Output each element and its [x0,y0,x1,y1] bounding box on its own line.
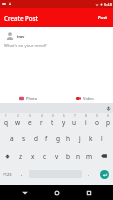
button[interactable]: Voice input [103,103,113,113]
button[interactable]: Post [93,8,113,27]
button[interactable]: Shift [0,147,15,165]
button[interactable]: Backspace [95,147,113,165]
staticText: c [43,152,47,161]
button[interactable]: v [51,147,62,165]
button[interactable]: h [63,130,74,147]
staticText: 8 [85,114,87,118]
button[interactable]: 1 [0,113,12,130]
staticText: x [31,152,35,161]
staticText: l [101,134,103,143]
staticText: What's on your mind? [4,43,47,49]
staticText: d [34,134,38,143]
staticText: p [106,118,110,127]
staticText: Photo [26,96,38,101]
button[interactable]: , [15,165,29,183]
staticText: j [79,134,81,143]
button[interactable]: b [62,147,73,165]
staticText: z [19,152,23,161]
staticText: v [55,152,59,161]
staticText: 3 [29,114,31,118]
staticText: m [86,152,93,161]
staticText: 7 [74,114,76,118]
button[interactable]: a [6,130,18,147]
staticText: i [85,118,87,127]
button[interactable]: x [27,147,39,165]
button[interactable]: l [96,130,107,147]
staticText: a [10,134,14,143]
staticText: 2 [17,114,19,118]
staticText: 9 [96,114,98,118]
staticText: 1 [5,114,7,118]
staticText: w [15,118,21,127]
staticText: , [21,171,23,178]
staticText: Post [98,15,108,21]
staticText: g [56,134,60,143]
button[interactable]: ?123 [0,165,15,183]
button[interactable]: Video [74,94,96,103]
staticText: . [88,171,90,178]
staticText: f [45,134,48,143]
button[interactable]: f [41,130,52,147]
staticText: 6 [63,114,65,118]
button[interactable]: 7 [69,113,80,130]
button[interactable]: 2 [12,113,24,130]
staticText: b [66,152,70,161]
button[interactable]: j [74,130,85,147]
button[interactable]: 9 [91,113,102,130]
staticText: e [28,118,32,127]
button[interactable]: 8 [80,113,91,130]
button[interactable]: 3 [24,113,36,130]
staticText: s [22,134,26,143]
button[interactable]: 0 [102,113,113,130]
staticText: 4 [41,114,43,118]
button[interactable]: c [39,147,51,165]
staticText: trav [17,34,25,39]
button[interactable]: Home [49,185,64,200]
button[interactable]: 4 [36,113,47,130]
button[interactable]: trav [6,32,25,40]
staticText: k [89,134,93,143]
button[interactable]: Photo [17,94,40,103]
staticText: n [76,152,81,161]
button[interactable]: g [52,130,63,147]
button[interactable]: d [30,130,41,147]
staticText: r [40,118,43,127]
staticText: ?123 [3,172,12,177]
staticText: t [51,118,54,127]
staticText: 0 [107,114,109,118]
button[interactable]: k [85,130,96,147]
staticText: q [4,118,8,127]
staticText: h [66,134,71,143]
staticText: 5 [52,114,54,118]
staticText: o [95,118,99,127]
staticText: u [72,118,77,127]
button[interactable]: 6 [58,113,69,130]
button[interactable]: s [18,130,30,147]
button[interactable]: Recents [81,185,96,200]
button[interactable]: Enter [100,170,109,179]
staticText: 6:48 [104,2,112,7]
button[interactable]: z [15,147,27,165]
button[interactable]: . [82,165,96,183]
button[interactable]: Back [17,185,32,200]
staticText: y [62,118,66,127]
button[interactable]: m [84,147,95,165]
button[interactable]: 5 [47,113,58,130]
staticText: Create Post [4,14,38,22]
staticText: Video [83,96,94,101]
button[interactable]: n [73,147,84,165]
